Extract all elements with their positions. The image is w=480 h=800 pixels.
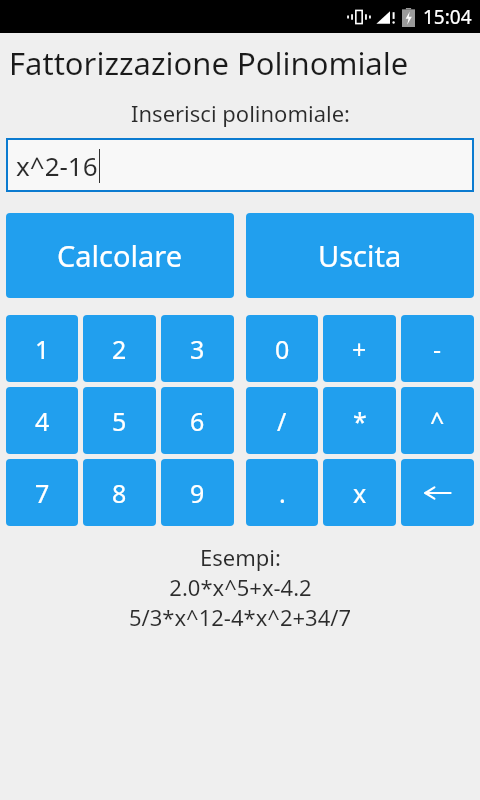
button[interactable]: .: [246, 459, 318, 526]
staticText: /: [277, 404, 287, 438]
staticText: 2: [112, 332, 127, 366]
button[interactable]: x^2-16: [6, 138, 474, 192]
staticText: 7: [35, 476, 50, 510]
staticText: 5/3*x^12-4*x^2+34/7: [129, 602, 351, 632]
button[interactable]: x: [323, 459, 396, 526]
staticText: 5: [112, 404, 127, 438]
staticText: 9: [190, 476, 205, 510]
button[interactable]: *: [323, 387, 396, 454]
staticText: ^: [430, 404, 445, 438]
button[interactable]: 9: [161, 459, 234, 526]
button[interactable]: ^: [401, 387, 474, 454]
staticText: 2.0*x^5+x-4.2: [169, 572, 312, 602]
staticText: +: [352, 332, 367, 366]
staticText: Calcolare: [57, 236, 183, 275]
button[interactable]: 3: [161, 315, 234, 382]
staticText: Inserisci polinomiale:: [131, 98, 350, 128]
button[interactable]: Backspace: [401, 459, 474, 526]
button[interactable]: Calcolare: [6, 213, 234, 298]
staticText: -: [433, 332, 442, 366]
staticText: Uscita: [318, 236, 402, 275]
staticText: 0: [275, 332, 290, 366]
staticText: 6: [190, 404, 205, 438]
button[interactable]: 2: [83, 315, 156, 382]
button[interactable]: 8: [83, 459, 156, 526]
staticText: *: [353, 404, 367, 438]
staticText: 8: [112, 476, 127, 510]
button[interactable]: 0: [246, 315, 318, 382]
staticText: Fattorizzazione Polinomiale: [9, 42, 409, 84]
staticText: 1: [35, 332, 50, 366]
button[interactable]: -: [401, 315, 474, 382]
button[interactable]: 6: [161, 387, 234, 454]
button[interactable]: Uscita: [246, 213, 474, 298]
button[interactable]: +: [323, 315, 396, 382]
button[interactable]: 1: [6, 315, 78, 382]
button[interactable]: 5: [83, 387, 156, 454]
staticText: x: [353, 476, 367, 510]
staticText: Esempi:: [200, 542, 281, 572]
button[interactable]: 7: [6, 459, 78, 526]
staticText: .: [279, 476, 286, 510]
button[interactable]: 4: [6, 387, 78, 454]
staticText: 4: [35, 404, 50, 438]
staticText: 15:04: [423, 4, 472, 30]
staticText: x^2-16: [16, 148, 98, 183]
staticText: 3: [190, 332, 205, 366]
button[interactable]: /: [246, 387, 318, 454]
